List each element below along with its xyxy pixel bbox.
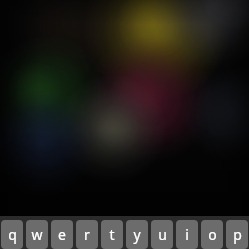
- staticText: e: [58, 225, 66, 244]
- button[interactable]: r: [76, 220, 98, 249]
- staticText: i: [185, 225, 189, 244]
- staticText: u: [158, 225, 167, 244]
- button[interactable]: t: [101, 220, 123, 249]
- button[interactable]: Dismiss keyboard: [0, 0, 249, 190]
- button[interactable]: i: [176, 220, 198, 249]
- button[interactable]: q: [1, 220, 23, 249]
- staticText: t: [109, 225, 115, 244]
- button[interactable]: u: [151, 220, 173, 249]
- button[interactable]: e: [51, 220, 73, 249]
- staticText: w: [31, 225, 43, 244]
- button[interactable]: w: [26, 220, 48, 249]
- staticText: o: [208, 225, 217, 244]
- staticText: q: [8, 225, 17, 244]
- button[interactable]: y: [126, 220, 148, 249]
- button[interactable]: o: [201, 220, 223, 249]
- staticText: r: [84, 225, 90, 244]
- staticText: p: [233, 225, 242, 244]
- button[interactable]: p: [226, 220, 248, 249]
- staticText: y: [133, 225, 141, 244]
